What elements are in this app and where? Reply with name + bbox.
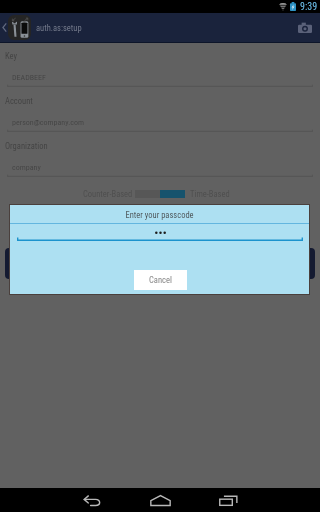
staticText: Counter-Based [83,189,133,199]
button[interactable]: Home [143,488,177,512]
staticText: person@company.com [12,118,84,127]
button[interactable]: Recent apps [211,488,245,512]
button[interactable]: Cancel [134,270,187,290]
staticText: Account [5,96,33,106]
staticText: Cancel [149,275,172,285]
button[interactable]: Scan with camera [290,13,319,42]
staticText: company [12,163,41,172]
staticText: auth.as:setup [36,23,82,33]
staticText: DEADBEEF [12,73,46,82]
button[interactable]: Back [75,488,109,512]
staticText: Enter your passcode [10,210,309,220]
button[interactable]: Counter or time based [135,190,185,198]
staticText: Time-Based [190,189,230,199]
staticText: 9:39 [300,1,318,13]
button[interactable]: Up [0,13,82,42]
staticText: Key [5,51,17,61]
staticText: Organization [5,141,48,151]
